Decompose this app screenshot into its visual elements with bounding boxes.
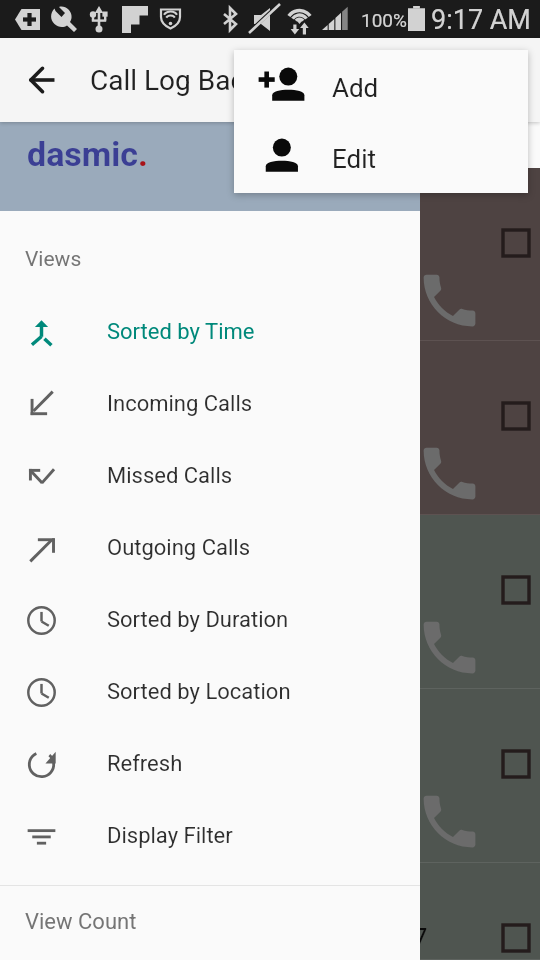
button[interactable]: View Count xyxy=(0,886,420,958)
staticText: 100% xyxy=(361,9,407,31)
staticText: Sorted by Duration xyxy=(107,607,289,633)
button[interactable]: Sorted by Time xyxy=(0,296,420,368)
button[interactable]: Select xyxy=(503,230,529,256)
staticText: Views xyxy=(25,247,82,272)
button[interactable]: Select xyxy=(503,577,529,603)
button[interactable]: Sorted by Duration xyxy=(0,584,420,656)
button[interactable]: Select xyxy=(0,168,540,341)
button[interactable]: Add xyxy=(234,50,528,121)
staticText: dasmic xyxy=(27,134,138,174)
button[interactable]: Select xyxy=(0,863,540,960)
staticText: Sorted by Time xyxy=(107,319,255,345)
staticText: Sorted by Location xyxy=(107,679,291,705)
button[interactable]: Outgoing Calls xyxy=(0,512,420,584)
button[interactable]: Incoming Calls xyxy=(0,368,420,440)
button[interactable]: Select xyxy=(503,925,529,951)
button[interactable]: Select xyxy=(503,751,529,777)
staticText: Outgoing Calls xyxy=(107,535,251,561)
button[interactable]: Display Filter xyxy=(0,800,420,872)
staticText: 9:17 AM xyxy=(431,4,531,36)
staticText: 08-25-2017 xyxy=(291,923,428,955)
button[interactable]: Missed Calls xyxy=(0,440,420,512)
button[interactable]: Select xyxy=(0,341,540,515)
staticText: Add xyxy=(332,73,379,103)
button[interactable]: Edit xyxy=(234,121,528,192)
button[interactable]: Back xyxy=(18,56,66,104)
button[interactable]: Select xyxy=(0,515,540,689)
staticText: Incoming Calls xyxy=(107,391,253,417)
staticText: Call Log Backup xyxy=(90,64,291,97)
staticText: Refresh xyxy=(107,751,183,777)
staticText: Missed Calls xyxy=(107,463,233,489)
button[interactable]: Select xyxy=(0,689,540,863)
staticText: . xyxy=(138,134,148,174)
staticText: Edit xyxy=(332,144,377,174)
button[interactable]: Refresh xyxy=(0,728,420,800)
button[interactable]: Select xyxy=(503,403,529,429)
staticText: Display Filter xyxy=(107,823,233,849)
staticText: View Count xyxy=(25,909,137,935)
button[interactable]: Sorted by Location xyxy=(0,656,420,728)
